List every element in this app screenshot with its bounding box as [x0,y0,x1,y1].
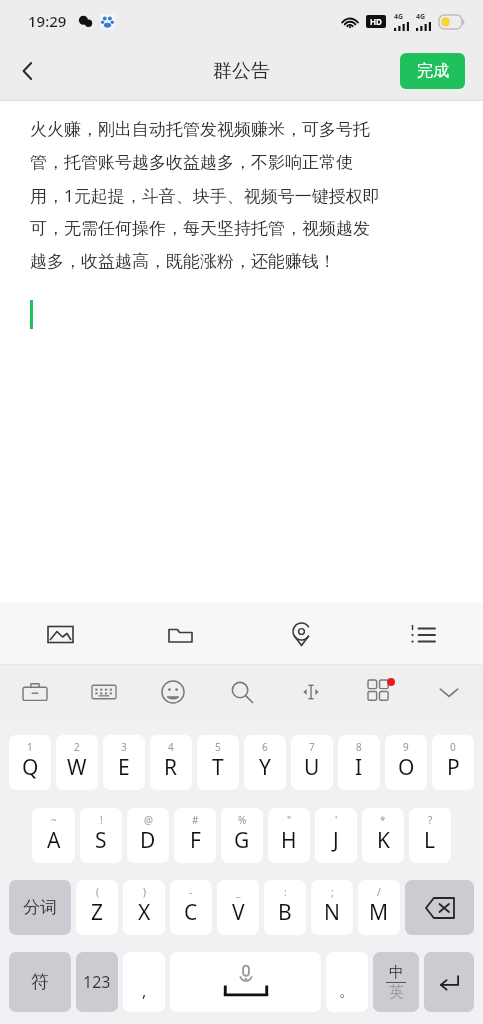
staticText: Y [259,753,271,782]
button[interactable]: Hide keyboard [414,665,483,718]
staticText: O [398,753,415,782]
staticText: 英 [389,983,404,1002]
button[interactable]: ? [409,808,451,863]
staticText: % [238,813,247,827]
staticText: 中 [389,963,404,982]
button[interactable]: Cursor [276,665,345,718]
button[interactable]: - [170,880,212,935]
button[interactable]: 符 [9,952,71,1012]
button[interactable]: Location [241,603,362,665]
staticText: / [377,885,381,899]
staticText: 火火赚，刚出自动托管发视频赚米，可多号托 [30,119,370,140]
staticText: 19:29 [28,11,67,31]
button[interactable]: 中 [373,952,419,1012]
staticText: * [380,813,386,827]
button[interactable]: ) [123,880,165,935]
button[interactable]: 5 [197,735,239,790]
staticText: ! [100,813,103,827]
staticText: 123 [83,971,111,993]
staticText: 2 [74,740,80,754]
staticText: M [369,898,389,927]
staticText: 9 [403,740,409,754]
staticText: X [138,898,151,927]
staticText: K [377,826,390,855]
button[interactable]: % [221,808,263,863]
staticText: 7 [309,740,315,754]
button[interactable]: ! [80,808,122,863]
button[interactable]: 3 [103,735,145,790]
staticText: L [424,826,436,855]
button[interactable]: 4 [150,735,192,790]
staticText: U [304,753,320,782]
button[interactable]: 2 [56,735,98,790]
button[interactable]: ' [315,808,357,863]
staticText: ; [331,885,334,899]
staticText: 可，无需任何操作，每天坚持托管，视频越发 [30,218,370,239]
staticText: W [67,753,87,782]
button[interactable]: Apps [345,665,414,718]
staticText: ~ [51,813,57,827]
button[interactable]: @ [127,808,169,863]
button[interactable]: 。 [326,952,368,1012]
staticText: H [281,826,297,855]
button[interactable]: 分词 [9,880,71,935]
button[interactable]: List [362,603,483,665]
staticText: D [140,826,156,855]
staticText: Q [22,753,39,782]
staticText: ' [335,813,338,827]
staticText: S [95,826,107,855]
staticText: B [278,898,292,927]
button[interactable]: Emoji [138,665,207,718]
button[interactable]: 7 [291,735,333,790]
staticText: 1 [27,740,33,754]
staticText: 8 [356,740,362,754]
button[interactable]: 完成 [400,53,465,89]
staticText: 。 [339,981,355,1001]
button[interactable]: 9 [385,735,427,790]
button[interactable]: _ [217,880,259,935]
staticText: R [164,753,178,782]
staticText: 0 [450,740,456,754]
button[interactable]: 8 [338,735,380,790]
staticText: N [324,898,340,927]
button[interactable]: Backspace [405,880,474,935]
button[interactable]: Space [170,952,321,1012]
button[interactable]: Files [120,603,241,665]
staticText: - [189,885,193,899]
button[interactable]: ( [76,880,118,935]
staticText: 分词 [23,897,57,918]
button[interactable]: ; [311,880,353,935]
staticText: 3 [121,740,127,754]
staticText: I [355,753,363,782]
staticText: : [284,885,287,899]
staticText: 越多，收益越高，既能涨粉，还能赚钱！ [30,251,336,272]
staticText: 完成 [417,61,449,81]
button[interactable]: # [174,808,216,863]
staticText: G [234,826,250,855]
button[interactable]: Keyboard [69,665,138,718]
button[interactable]: Search [207,665,276,718]
button[interactable]: " [268,808,310,863]
staticText: A [47,826,61,855]
staticText: 群公告 [213,59,270,83]
button[interactable]: 123 [76,952,118,1012]
button[interactable]: 0 [432,735,474,790]
button[interactable]: ~ [32,808,75,863]
button[interactable]: 6 [244,735,286,790]
button[interactable]: / [358,880,400,935]
staticText: # [192,813,199,827]
button[interactable]: , [123,952,165,1012]
staticText: 管，托管账号越多收益越多，不影响正常使 [30,152,353,173]
button[interactable]: : [264,880,306,935]
staticText: T [212,753,224,782]
staticText: F [190,826,201,855]
button[interactable]: 1 [9,735,51,790]
button[interactable]: Enter [424,952,474,1012]
button[interactable]: Photo [0,603,120,665]
button[interactable]: * [362,808,404,863]
staticText: V [232,898,245,927]
staticText: _ [236,885,241,899]
button[interactable]: Back [0,42,56,100]
button[interactable]: Tools [0,665,69,718]
staticText: " [287,813,292,827]
